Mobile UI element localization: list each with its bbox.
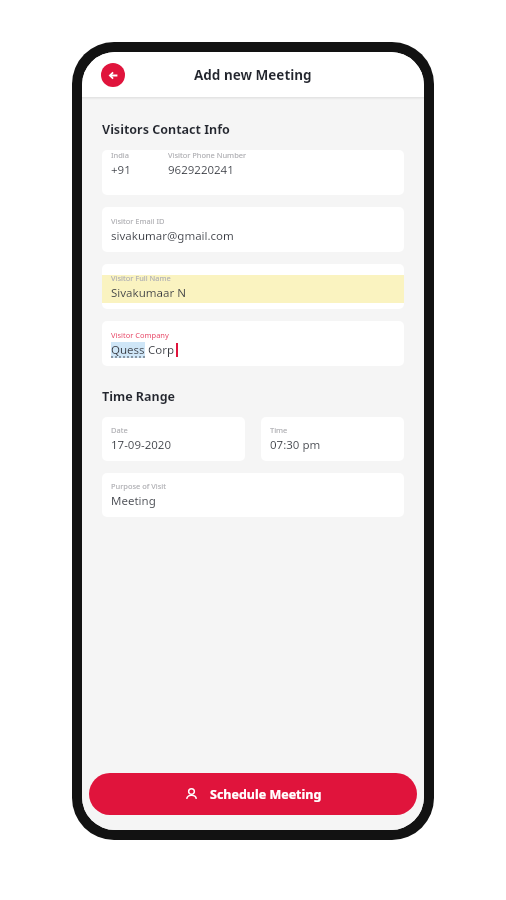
staticText: Add new Meeting [194, 66, 312, 84]
staticText: Schedule Meeting [210, 786, 322, 803]
staticText: 9629220241 [168, 162, 234, 178]
staticText: Meeting [111, 493, 156, 509]
staticText: Visitor Full Name [111, 273, 171, 283]
staticText: India [111, 150, 129, 160]
staticText: 17-09-2020 [111, 437, 172, 453]
staticText: 07:30 pm [270, 437, 321, 453]
staticText: +91 [111, 162, 131, 178]
staticText: Quess [111, 342, 145, 358]
button[interactable]: Time [261, 417, 404, 461]
button[interactable]: Visitor Full Name [102, 264, 404, 309]
button[interactable]: Visitor Company [102, 321, 404, 366]
button[interactable]: Schedule Meeting [89, 773, 417, 815]
staticText: Purpose of Visit [111, 481, 166, 491]
staticText: Date [111, 425, 128, 435]
staticText: Visitors Contact Info [102, 121, 230, 138]
button[interactable]: Date [102, 417, 245, 461]
button[interactable]: Purpose of Visit [102, 473, 404, 517]
button[interactable]: India [102, 150, 404, 195]
staticText: Visitor Phone Number [168, 150, 247, 160]
staticText: Visitor Company [111, 330, 169, 340]
button[interactable]: Back [101, 63, 125, 87]
staticText: Time Range [102, 388, 176, 405]
button[interactable]: Visitor Email ID [102, 207, 404, 252]
staticText: Corp [148, 342, 175, 358]
staticText: Time [270, 425, 288, 435]
staticText: sivakumar@gmail.com [111, 228, 234, 244]
staticText: Sivakumaar N [111, 285, 186, 301]
staticText: Visitor Email ID [111, 216, 165, 226]
